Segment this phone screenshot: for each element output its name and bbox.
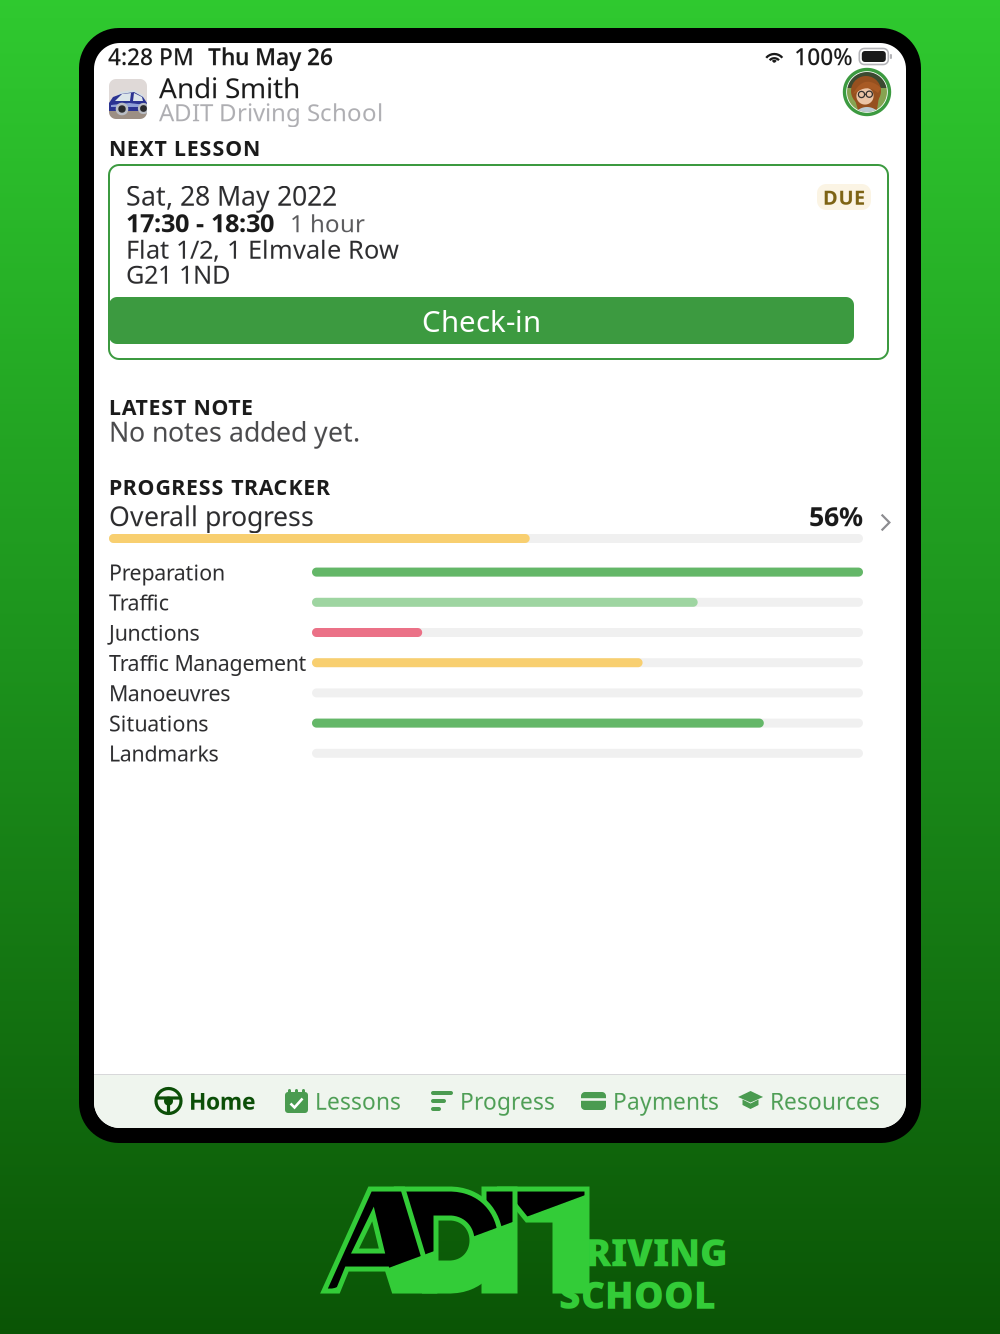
staticText: No notes added yet.	[109, 414, 360, 449]
staticText: Sat, 28 May 2022	[126, 178, 337, 213]
staticText: Payments	[613, 1086, 719, 1116]
staticText: 56%	[809, 498, 863, 534]
staticText: PROGRESS TRACKER	[109, 473, 330, 501]
staticText: Home	[189, 1086, 256, 1116]
button[interactable]: Lessons	[285, 1074, 431, 1128]
staticText: Traffic Management	[109, 648, 307, 677]
staticText: Traffic	[109, 588, 169, 616]
staticText: Junctions	[109, 618, 199, 647]
staticText: Thu May 26	[208, 41, 333, 71]
staticText: Preparation	[109, 558, 225, 586]
staticText: Andi Smith	[159, 69, 300, 106]
staticText: Manoeuvres	[109, 679, 230, 707]
staticText: Flat 1/2, 1 Elmvale Row	[126, 232, 399, 266]
button[interactable]: Payments	[581, 1074, 738, 1128]
button[interactable]: Overall progress	[109, 503, 891, 541]
staticText: DRIVING	[559, 1227, 728, 1277]
button[interactable]: Home	[155, 1074, 285, 1128]
staticText: 1 hour	[290, 207, 365, 239]
staticText: Resources	[770, 1086, 880, 1116]
staticText: 100%	[794, 41, 852, 71]
staticText: SCHOOL	[559, 1270, 716, 1319]
staticText: G21 1ND	[126, 257, 230, 291]
staticText: Progress	[460, 1086, 555, 1116]
staticText: Lessons	[315, 1086, 401, 1116]
staticText: 17:30 - 18:30	[126, 206, 274, 239]
staticText: ADIT Driving School	[159, 96, 383, 128]
staticText: NEXT LESSON	[109, 134, 260, 162]
staticText: LATEST NOTE	[109, 393, 253, 421]
button[interactable]: Progress	[431, 1074, 581, 1128]
staticText: Situations	[109, 709, 208, 737]
staticText: Check-in	[422, 301, 541, 340]
button[interactable]: Check-in	[109, 297, 854, 344]
staticText: 4:28 PM	[108, 41, 194, 71]
button[interactable]: Resources	[738, 1074, 888, 1128]
staticText: DUE	[823, 184, 865, 210]
button[interactable]: Profile	[843, 68, 891, 116]
staticText: Overall progress	[109, 498, 314, 534]
staticText: Landmarks	[109, 739, 218, 767]
